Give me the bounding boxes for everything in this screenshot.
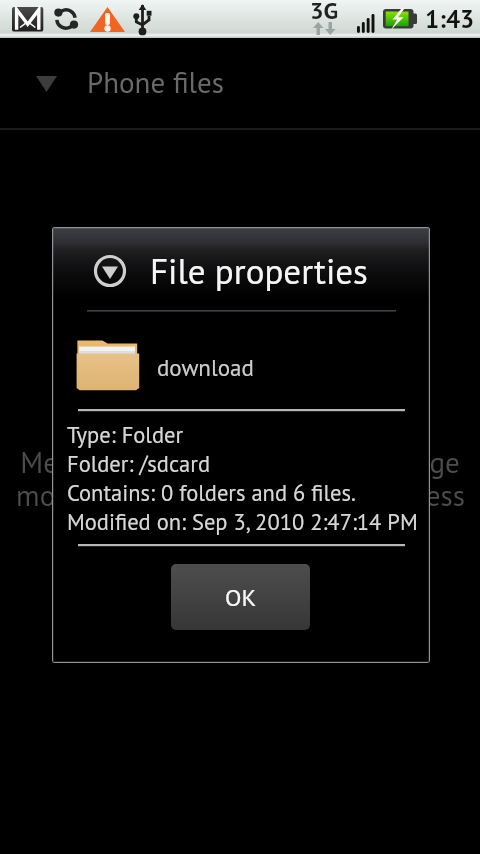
staticText: Phone files	[87, 63, 225, 101]
staticText: download	[157, 353, 254, 383]
staticText: Modified on: Sep 3, 2010 2:47:14 PM	[67, 507, 418, 536]
staticText: Memory card is mounted as storage	[20, 443, 460, 481]
button[interactable]: OK	[171, 564, 310, 630]
button[interactable]: File properties	[52, 227, 430, 663]
staticText: Folder: /sdcard	[67, 449, 210, 478]
staticText: Contains: 0 folders and 6 files.	[67, 478, 356, 507]
staticText: 1:43	[425, 3, 475, 35]
staticText: OK	[225, 582, 257, 613]
staticText: File properties	[150, 248, 368, 293]
other: File properties	[92, 253, 128, 289]
staticText: mounted, so the files have no access	[16, 476, 465, 514]
staticText: 3G	[310, 0, 339, 26]
staticText: Type: Folder	[67, 420, 184, 449]
